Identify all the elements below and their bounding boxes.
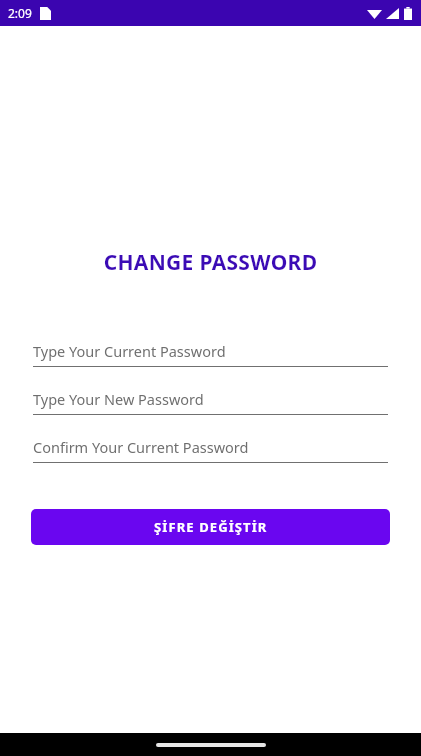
- staticText: 2:09: [8, 5, 32, 21]
- button[interactable]: ŞİFRE DEĞİŞTİR: [31, 509, 390, 545]
- staticText: Type Your Current Password: [33, 341, 226, 361]
- staticText: CHANGE PASSWORD: [0, 248, 421, 277]
- staticText: Confirm Your Current Password: [33, 437, 249, 457]
- button[interactable]: Type Your New Password: [33, 389, 388, 415]
- other: Home gesture bar: [156, 743, 266, 747]
- staticText: Type Your New Password: [33, 389, 204, 409]
- button[interactable]: Type Your Current Password: [33, 341, 388, 367]
- button[interactable]: Confirm Your Current Password: [33, 437, 388, 463]
- staticText: ŞİFRE DEĞİŞTİR: [154, 518, 268, 536]
